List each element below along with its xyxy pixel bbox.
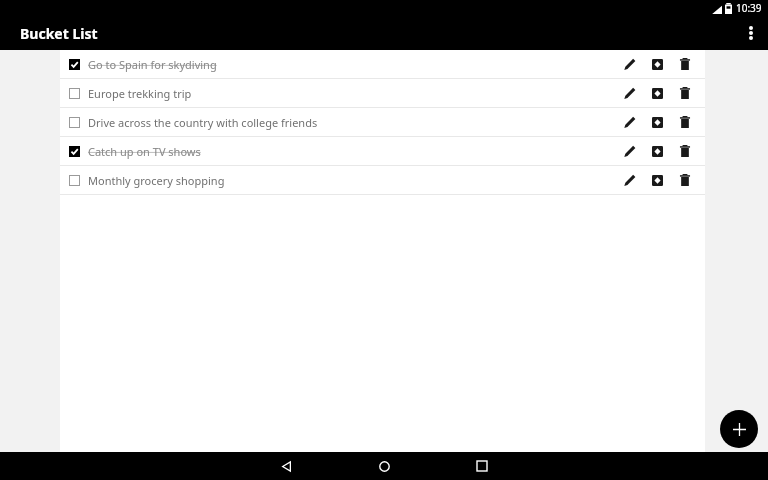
button[interactable]: Toggle Europe trekking trip bbox=[60, 79, 88, 107]
button[interactable]: Recents bbox=[465, 452, 499, 480]
staticText: Monthly grocery shopping bbox=[88, 173, 225, 188]
staticText: Catch up on TV shows bbox=[88, 144, 201, 159]
staticText: Bucket List bbox=[20, 24, 98, 43]
button[interactable]: Edit Monthly grocery shopping bbox=[615, 166, 643, 194]
button[interactable]: Toggle Catch up on TV shows bbox=[60, 137, 705, 165]
button[interactable]: Delete Catch up on TV shows bbox=[671, 137, 699, 165]
button[interactable]: Save Europe trekking trip bbox=[643, 79, 671, 107]
button[interactable]: Toggle Drive across the country with col… bbox=[60, 108, 88, 136]
button[interactable]: Delete Go to Spain for skydiving bbox=[671, 50, 699, 78]
button[interactable]: Edit Drive across the country with colle… bbox=[615, 108, 643, 136]
button[interactable]: Toggle Go to Spain for skydiving bbox=[60, 50, 88, 78]
button[interactable]: Save Drive across the country with colle… bbox=[643, 108, 671, 136]
button[interactable]: Toggle Monthly grocery shopping bbox=[60, 166, 88, 194]
button[interactable]: Delete Monthly grocery shopping bbox=[671, 166, 699, 194]
staticText: Drive across the country with college fr… bbox=[88, 115, 318, 130]
staticText: Go to Spain for skydiving bbox=[88, 57, 217, 72]
button[interactable]: Save Go to Spain for skydiving bbox=[643, 50, 671, 78]
button[interactable]: Toggle Drive across the country with col… bbox=[60, 108, 705, 136]
button[interactable]: Edit Catch up on TV shows bbox=[615, 137, 643, 165]
button[interactable]: Delete Drive across the country with col… bbox=[671, 108, 699, 136]
button[interactable]: Toggle Europe trekking trip bbox=[60, 79, 705, 107]
button[interactable]: Toggle Go to Spain for skydiving bbox=[60, 50, 705, 78]
button[interactable]: Save Catch up on TV shows bbox=[643, 137, 671, 165]
staticText: 10:39 bbox=[736, 1, 762, 15]
staticText: Europe trekking trip bbox=[88, 86, 192, 101]
button[interactable]: Save Monthly grocery shopping bbox=[643, 166, 671, 194]
button[interactable]: Toggle Catch up on TV shows bbox=[60, 137, 88, 165]
button[interactable]: Back bbox=[269, 452, 303, 480]
button[interactable]: Add item bbox=[720, 410, 758, 448]
button[interactable]: Toggle Monthly grocery shopping bbox=[60, 166, 705, 194]
button[interactable]: Edit Go to Spain for skydiving bbox=[615, 50, 643, 78]
button[interactable]: Home bbox=[367, 452, 401, 480]
button[interactable]: More options bbox=[734, 16, 768, 50]
button[interactable]: Edit Europe trekking trip bbox=[615, 79, 643, 107]
button[interactable]: Delete Europe trekking trip bbox=[671, 79, 699, 107]
